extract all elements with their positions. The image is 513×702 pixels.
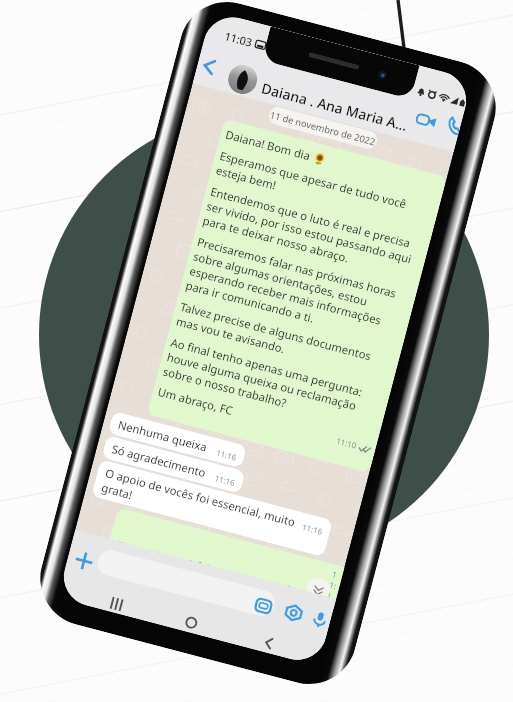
button[interactable]: Sticker (251, 593, 276, 619)
staticText: 11 de novembro de 2022 (268, 108, 377, 149)
staticText: Só agradecimento (110, 441, 208, 480)
staticText: Esperamos que apesar de tudo você esteja… (214, 148, 409, 226)
staticText: Ao final tenho apenas uma pergunta: houv… (162, 335, 364, 428)
staticText: Fico muito satisfeito com suas palavras, (115, 537, 322, 605)
staticText: 11:10 (335, 435, 358, 451)
button[interactable]: Recents (105, 592, 129, 615)
button[interactable]: Fico muito satisfeito com suas palavras, (107, 507, 345, 609)
staticText: 11:03 (223, 28, 255, 50)
button[interactable]: Camera (281, 600, 307, 626)
staticText: Nenhuma queixa (116, 417, 209, 455)
button[interactable]: Nenhuma queixa (108, 411, 247, 468)
staticText: Um abraço, FC (156, 384, 235, 418)
button[interactable]: Voice message (307, 607, 333, 633)
button[interactable]: Video call (410, 104, 442, 136)
staticText: 11:25 (270, 584, 293, 600)
staticText: Talvez precise de alguns documentos mas … (175, 299, 373, 378)
button[interactable]: Scroll to bottom (303, 575, 332, 604)
button[interactable]: Back (256, 631, 281, 655)
button[interactable]: O apoio de vocês foi essencial, muito (91, 459, 333, 557)
staticText: grata! (100, 480, 135, 502)
button[interactable]: Contact photo (225, 62, 260, 97)
button[interactable]: Voice call (439, 111, 463, 140)
button[interactable]: Attach (68, 544, 100, 576)
staticText: 11:18 (324, 568, 343, 609)
button[interactable]: Home (179, 610, 203, 635)
staticText: Daiana! Bom dia 🌻 (224, 127, 329, 168)
staticText: Daiana . Ana Maria A... (259, 78, 410, 135)
button[interactable]: Daiana! Bom dia 🌻 (147, 119, 447, 473)
staticText: 11:16 (214, 472, 237, 488)
button[interactable]: Só agradecimento (101, 435, 245, 494)
button[interactable]: Back (195, 51, 223, 80)
staticText: Entendemos que o luto é real e precisa s… (201, 184, 418, 281)
staticText: Precisaremos falar nas próximas horas so… (184, 234, 399, 344)
button[interactable] (95, 547, 277, 619)
staticText: 11:16 (301, 521, 324, 537)
staticText: 11:16 (215, 447, 238, 463)
staticText: O apoio de vocês foi essencial, muito (104, 465, 297, 530)
